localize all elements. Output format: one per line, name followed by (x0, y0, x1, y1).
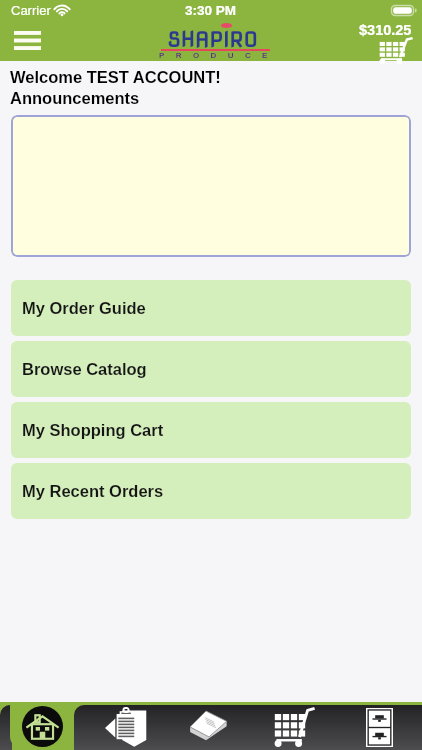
button[interactable]: Menu (5, 23, 49, 57)
staticText: $310.25 (359, 22, 412, 38)
button[interactable]: Recent Orders (335, 705, 422, 750)
staticText: 3:30 PM (185, 3, 237, 18)
staticText: Carrier (11, 3, 51, 18)
button[interactable]: Browse Catalog (11, 341, 411, 397)
button[interactable]: Shopping cart, $310.25 (352, 22, 418, 63)
button[interactable]: Home (10, 702, 74, 750)
button[interactable]: My Order Guide (11, 280, 411, 336)
staticText: My Order Guide (22, 299, 146, 317)
button[interactable]: My Shopping Cart (11, 402, 411, 458)
staticText: Welcome TEST ACCOUNT! (10, 68, 221, 86)
button[interactable]: Order Guide (74, 705, 161, 750)
button[interactable]: Shopping Cart (248, 705, 335, 750)
button[interactable]: My Recent Orders (11, 463, 411, 519)
staticText: SHAPIRO (167, 27, 258, 52)
staticText: My Recent Orders (22, 482, 164, 500)
staticText: PRODUCE (159, 51, 279, 60)
staticText: Browse Catalog (22, 360, 147, 378)
staticText: Announcements (10, 89, 140, 107)
button[interactable]: Browse Catalog (161, 705, 248, 750)
staticText: My Shopping Cart (22, 421, 164, 439)
